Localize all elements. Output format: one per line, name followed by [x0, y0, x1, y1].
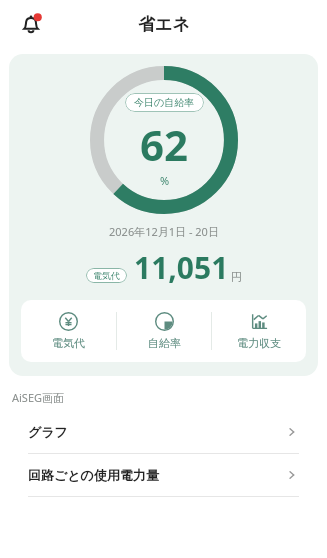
staticText: 今日の自給率	[134, 96, 195, 109]
button[interactable]: Notifications	[14, 7, 48, 41]
button[interactable]: グラフ	[12, 411, 315, 453]
button[interactable]: 電力収支	[212, 300, 306, 362]
staticText: 省エネ	[138, 14, 190, 35]
staticText: 11,051	[134, 247, 229, 288]
staticText: 62	[140, 116, 189, 173]
button[interactable]: 電気代	[21, 300, 116, 362]
staticText: 電力収支	[237, 336, 281, 350]
staticText: 回路ごとの使用電力量	[28, 467, 285, 483]
staticText: 円	[231, 270, 242, 284]
staticText: 電気代	[52, 336, 85, 350]
staticText: 電気代	[93, 270, 120, 281]
staticText: AiSEG画面	[12, 390, 65, 405]
staticText: 2026年12月1日 - 20日	[109, 224, 219, 239]
staticText: グラフ	[28, 424, 285, 440]
staticText: %	[160, 173, 170, 188]
button[interactable]: 回路ごとの使用電力量	[12, 454, 315, 496]
button[interactable]: 自給率	[117, 300, 211, 362]
staticText: 自給率	[148, 336, 181, 350]
